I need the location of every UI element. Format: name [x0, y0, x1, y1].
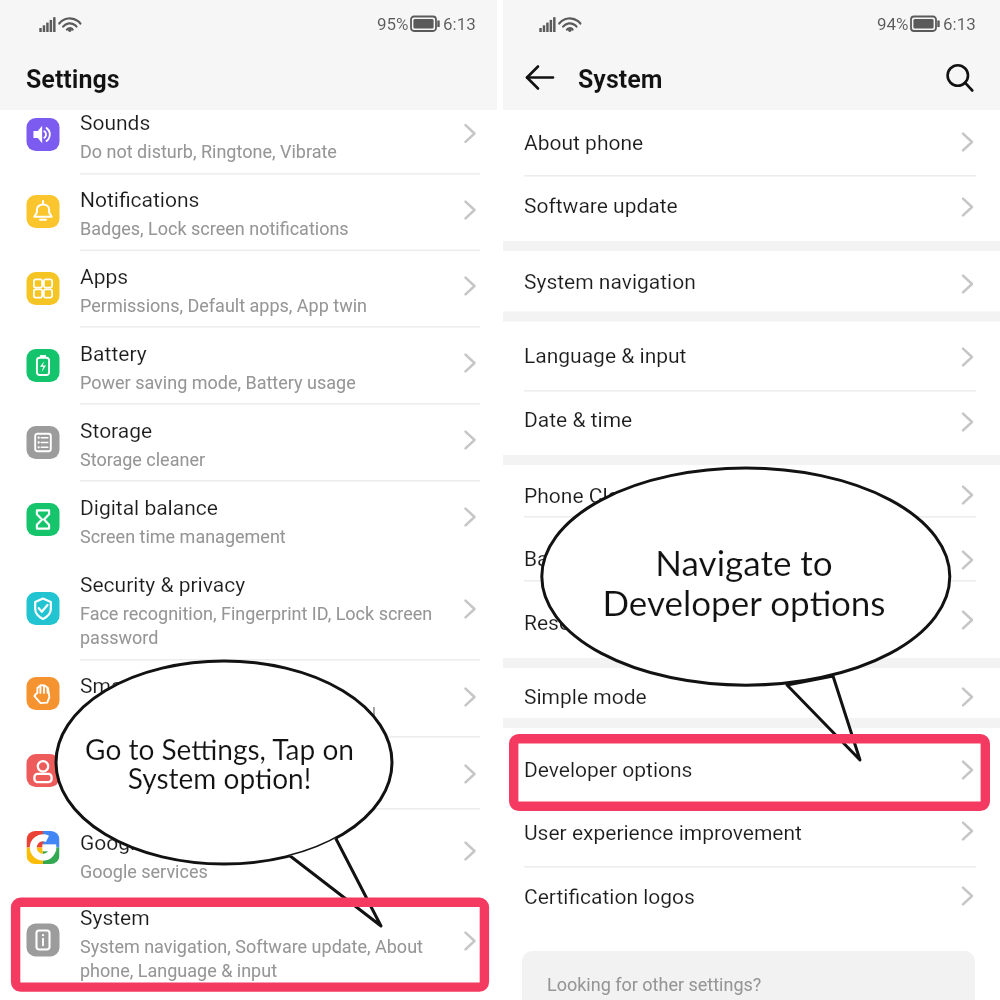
staticText: Storage cleaner — [80, 449, 206, 470]
staticText: Date & time — [524, 408, 633, 433]
staticText: System — [80, 906, 150, 931]
staticText: Permissions, Default apps, App twin — [80, 295, 368, 316]
staticText: Software update — [524, 194, 678, 219]
staticText: password — [80, 627, 159, 648]
staticText: System navigation — [524, 270, 696, 295]
staticText: Screen time management — [80, 526, 286, 547]
staticText: Go to Settings, Tap on System option! — [85, 732, 354, 795]
button[interactable] — [502, 528, 1000, 590]
staticText: phone, Language & input — [80, 960, 278, 981]
button[interactable] — [0, 326, 498, 400]
staticText: Navigate to Developer options — [602, 541, 886, 623]
staticText: Power saving mode, Battery usage — [80, 372, 356, 393]
staticText: Reset — [524, 611, 577, 636]
button[interactable] — [0, 658, 498, 732]
staticText: System navigation, Software update, Abou… — [80, 936, 423, 957]
button[interactable] — [0, 172, 498, 246]
button[interactable] — [0, 815, 498, 889]
staticText: Sounds — [80, 111, 151, 136]
button[interactable] — [502, 866, 1000, 928]
button[interactable] — [0, 557, 498, 631]
staticText: About phone — [524, 131, 644, 156]
button[interactable] — [502, 739, 1000, 801]
staticText: Accounts — [80, 781, 156, 802]
staticText: Backup & restore — [524, 547, 683, 572]
staticText: Digital balance — [80, 496, 218, 521]
staticText: 94% — [877, 14, 909, 34]
staticText: Developer options — [524, 758, 693, 783]
staticText: Notifications — [80, 188, 200, 213]
staticText: Face recognition, Fingerprint ID, Lock s… — [80, 603, 433, 624]
button[interactable] — [502, 592, 1000, 654]
staticText: User experience improvement — [524, 821, 802, 846]
staticText: Phone Clone — [524, 484, 643, 509]
staticText: Looking for other settings? — [547, 974, 762, 995]
staticText: Google services — [80, 861, 208, 882]
button[interactable] — [0, 735, 498, 809]
staticText: Users & accounts — [80, 751, 244, 776]
button[interactable] — [0, 95, 498, 169]
button[interactable] — [502, 802, 1000, 864]
staticText: Simple mode — [524, 685, 647, 710]
button[interactable] — [502, 666, 1000, 728]
staticText: Do not disturb, Ringtone, Vibrate — [80, 141, 337, 162]
button[interactable] — [502, 251, 1000, 313]
staticText: Smart assistance — [80, 674, 244, 699]
button[interactable] — [0, 480, 498, 554]
staticText: Accessibility features, Motion control — [80, 704, 377, 725]
staticText: 95% — [377, 14, 409, 34]
button[interactable] — [502, 112, 1000, 174]
staticText: Settings — [26, 65, 120, 94]
button[interactable] — [502, 389, 1000, 451]
staticText: Badges, Lock screen notifications — [80, 218, 349, 239]
staticText: Security & privacy — [80, 573, 246, 598]
staticText: System — [578, 65, 663, 94]
staticText: Battery — [80, 342, 147, 367]
staticText: 6:13 — [443, 14, 476, 34]
staticText: Certification logos — [524, 885, 695, 910]
button[interactable] — [0, 403, 498, 477]
button[interactable] — [0, 890, 498, 964]
staticText: Storage — [80, 419, 153, 444]
staticText: Language & input — [524, 344, 687, 369]
button[interactable] — [0, 249, 498, 323]
button[interactable] — [502, 465, 1000, 527]
staticText: Apps — [80, 265, 129, 290]
staticText: Google — [80, 831, 147, 856]
button[interactable] — [502, 175, 1000, 237]
button[interactable] — [502, 325, 1000, 387]
staticText: 6:13 — [943, 14, 976, 34]
